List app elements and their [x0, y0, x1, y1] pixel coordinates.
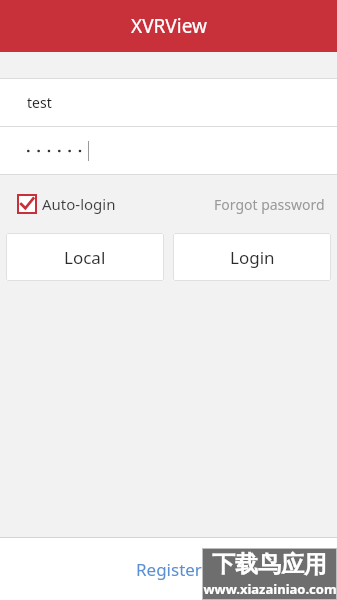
staticText: Register: [136, 558, 202, 581]
staticText: www.xiazainiao.com: [203, 580, 337, 598]
staticText: test: [27, 93, 52, 112]
button[interactable]: test: [0, 79, 337, 126]
staticText: XVRView: [131, 13, 207, 39]
staticText: Login: [230, 246, 275, 269]
staticText: Forgot password: [214, 195, 325, 214]
staticText: Local: [64, 246, 106, 269]
button[interactable]: [0, 127, 337, 174]
button[interactable]: Register: [126, 550, 212, 589]
staticText: Auto-login: [42, 194, 116, 214]
button[interactable]: Auto-login: [17, 194, 116, 214]
staticText: 下载鸟应用: [212, 550, 327, 579]
button[interactable]: Local: [6, 233, 164, 281]
button[interactable]: Login: [173, 233, 331, 281]
button[interactable]: Forgot password: [210, 189, 329, 220]
